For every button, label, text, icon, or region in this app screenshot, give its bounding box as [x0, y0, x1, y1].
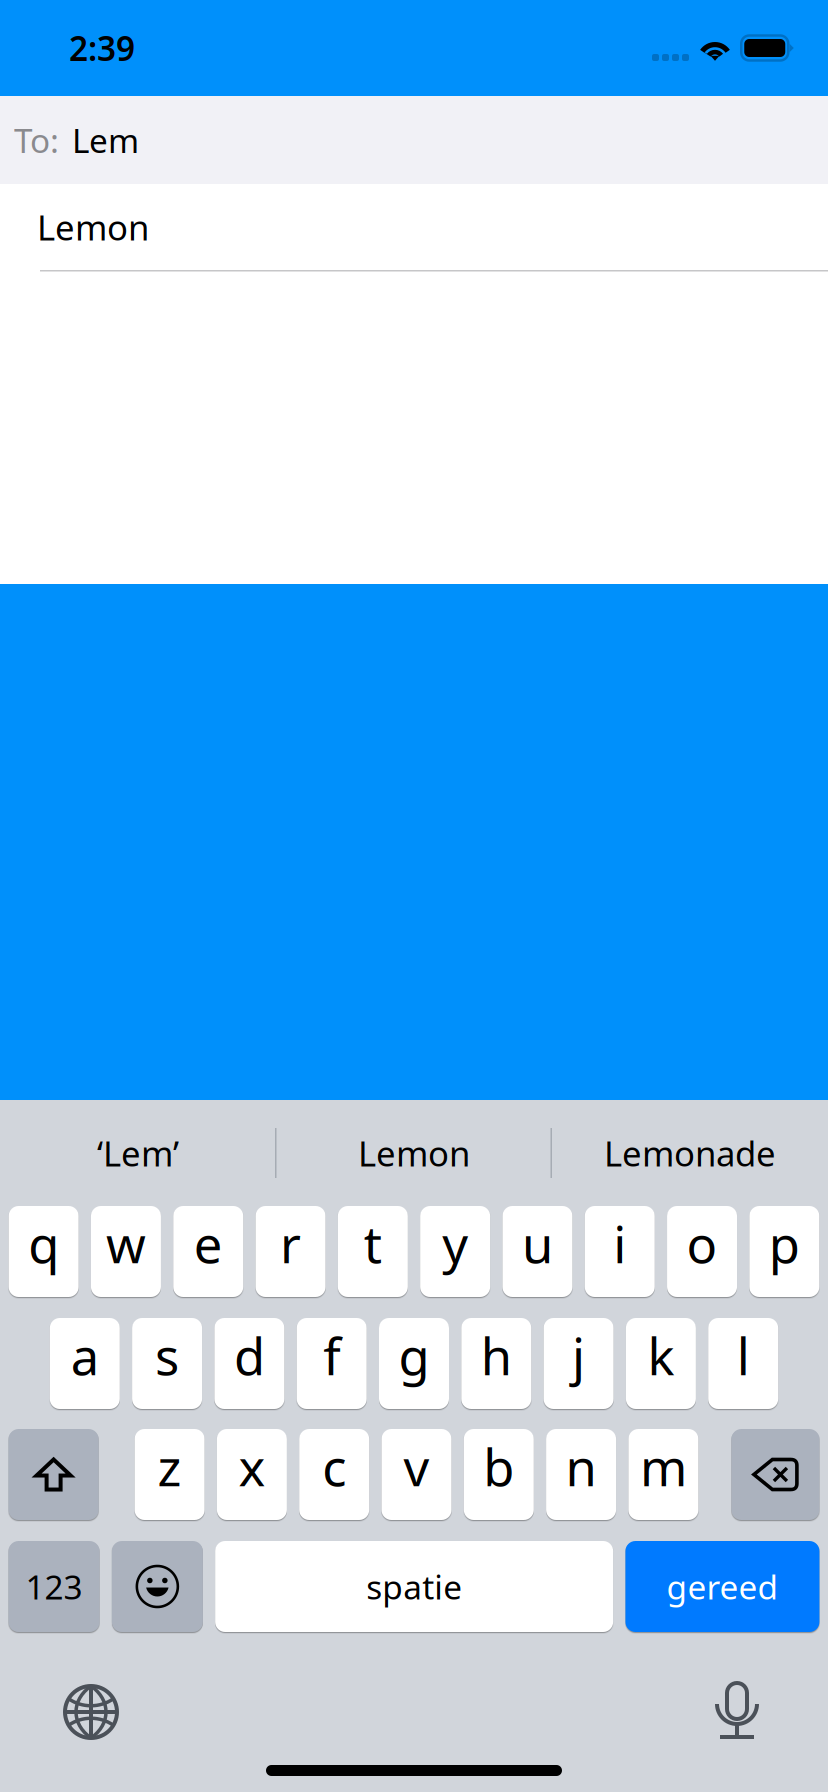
- staticText: g: [398, 1322, 429, 1389]
- button[interactable]: g: [379, 1318, 449, 1409]
- staticText: b: [483, 1433, 514, 1500]
- button[interactable]: r: [255, 1206, 325, 1297]
- staticText: q: [28, 1210, 59, 1277]
- button[interactable]: w: [91, 1206, 161, 1297]
- button[interactable]: Emoji: [112, 1541, 203, 1632]
- staticText: ‘Lem’: [97, 1130, 179, 1176]
- button[interactable]: x: [217, 1429, 287, 1520]
- staticText: s: [155, 1322, 179, 1389]
- button[interactable]: z: [135, 1429, 205, 1520]
- button[interactable]: a: [50, 1318, 120, 1409]
- staticText: r: [280, 1210, 301, 1277]
- staticText: x: [238, 1433, 265, 1500]
- button[interactable]: ‘Lem’: [0, 1100, 276, 1206]
- button[interactable]: d: [214, 1318, 284, 1409]
- button[interactable]: n: [546, 1429, 616, 1520]
- staticText: e: [194, 1210, 223, 1277]
- staticText: 123: [26, 1564, 83, 1609]
- button[interactable]: b: [464, 1429, 534, 1520]
- button[interactable]: e: [173, 1206, 243, 1297]
- button[interactable]: v: [381, 1429, 451, 1520]
- button[interactable]: Lemon: [276, 1100, 552, 1206]
- staticText: v: [403, 1433, 429, 1500]
- staticText: gereed: [666, 1564, 778, 1609]
- staticText: Lemon: [37, 204, 149, 250]
- button[interactable]: gereed: [625, 1541, 819, 1632]
- staticText: f: [323, 1322, 340, 1389]
- button[interactable]: c: [299, 1429, 369, 1520]
- button[interactable]: Shift: [9, 1429, 99, 1520]
- button[interactable]: h: [461, 1318, 531, 1409]
- button[interactable]: k: [626, 1318, 696, 1409]
- button[interactable]: p: [749, 1206, 819, 1297]
- staticText: d: [234, 1322, 265, 1389]
- button[interactable]: Numbers: [9, 1541, 100, 1632]
- button[interactable]: Delete: [731, 1429, 819, 1520]
- button[interactable]: l: [708, 1318, 778, 1409]
- button[interactable]: u: [502, 1206, 572, 1297]
- button[interactable]: Lemonade: [552, 1100, 828, 1206]
- staticText: z: [158, 1433, 182, 1500]
- staticText: To:: [14, 118, 59, 162]
- staticText: Lemon: [358, 1130, 470, 1176]
- button[interactable]: t: [338, 1206, 408, 1297]
- staticText: u: [522, 1210, 553, 1277]
- staticText: t: [364, 1210, 382, 1277]
- staticText: j: [572, 1322, 585, 1389]
- staticText: p: [769, 1210, 800, 1277]
- button[interactable]: Dictate: [696, 1671, 778, 1753]
- staticText: y: [442, 1210, 468, 1277]
- staticText: i: [613, 1210, 626, 1277]
- button[interactable]: j: [544, 1318, 614, 1409]
- button[interactable]: i: [585, 1206, 655, 1297]
- staticText: spatie: [366, 1564, 462, 1609]
- staticText: m: [640, 1433, 687, 1500]
- button[interactable]: spatie: [215, 1541, 613, 1632]
- staticText: n: [566, 1433, 597, 1500]
- button[interactable]: y: [420, 1206, 490, 1297]
- staticText: a: [71, 1322, 99, 1389]
- button[interactable]: o: [667, 1206, 737, 1297]
- button[interactable]: Next keyboard: [50, 1671, 132, 1753]
- staticText: k: [647, 1322, 674, 1389]
- staticText: c: [322, 1433, 346, 1500]
- staticText: Lemonade: [604, 1130, 776, 1176]
- button[interactable]: s: [132, 1318, 202, 1409]
- staticText: h: [481, 1322, 512, 1389]
- staticText: Lem: [72, 118, 139, 162]
- staticText: w: [106, 1210, 146, 1277]
- button[interactable]: q: [9, 1206, 79, 1297]
- button[interactable]: m: [628, 1429, 698, 1520]
- button[interactable]: f: [297, 1318, 367, 1409]
- staticText: l: [737, 1322, 750, 1389]
- staticText: 2:39: [69, 26, 135, 70]
- staticText: o: [686, 1210, 717, 1277]
